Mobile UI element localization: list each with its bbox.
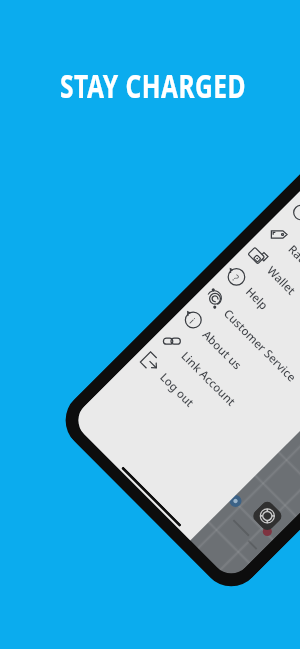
- button[interactable]: Customer Service: [193, 277, 300, 418]
- staticText: Rates: [285, 242, 300, 275]
- button[interactable]: i: [171, 298, 300, 440]
- button[interactable]: Camera: [250, 499, 284, 533]
- button[interactable]: Rates: [257, 213, 300, 354]
- button[interactable]: Link Account: [150, 319, 291, 461]
- button[interactable]: Wallet: [236, 234, 300, 375]
- staticText: i: [181, 309, 204, 332]
- staticText: Help: [242, 284, 272, 314]
- staticText: Customer Service: [220, 306, 300, 386]
- staticText: About us: [199, 327, 245, 374]
- staticText: ?: [224, 266, 247, 289]
- staticText: Link Account: [178, 348, 239, 410]
- staticText: Wallet: [263, 263, 299, 299]
- staticText: STAY CHARGED: [38, 64, 268, 108]
- staticText: Log out: [156, 369, 197, 410]
- button[interactable]: Log out: [129, 340, 270, 482]
- button[interactable]: ?: [214, 255, 300, 396]
